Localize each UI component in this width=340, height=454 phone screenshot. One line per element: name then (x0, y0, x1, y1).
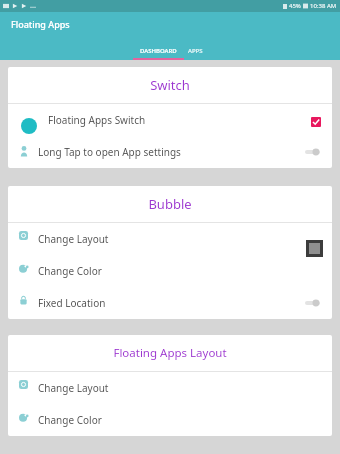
staticText: Fixed Location (38, 296, 106, 310)
button[interactable]: DASHBOARD (133, 42, 184, 60)
button[interactable]: Floating Apps Switch (8, 104, 332, 136)
staticText: Change Color (38, 264, 102, 278)
staticText: Floating Apps (11, 18, 70, 30)
button[interactable]: Change Layout (8, 223, 332, 255)
staticText: 45% (289, 2, 301, 10)
button[interactable]: Change Color (8, 404, 332, 436)
staticText: DASHBOARD (140, 47, 177, 55)
button[interactable]: Change Color (8, 255, 332, 287)
staticText: APPS (188, 47, 203, 55)
button[interactable]: Toggle off (305, 297, 320, 309)
button[interactable]: Long Tap to open App settings (8, 136, 332, 168)
button[interactable]: APPS (184, 42, 206, 60)
staticText: Switch (150, 76, 190, 94)
button[interactable]: Floating Apps Switch checkbox (311, 117, 321, 127)
staticText: Change Layout (38, 232, 109, 246)
staticText: Change Layout (38, 381, 109, 395)
staticText: 10:38 AM (310, 2, 337, 10)
button[interactable]: Fixed Location (8, 287, 332, 319)
button[interactable]: Change Layout (8, 372, 332, 404)
staticText: Floating Apps Switch (48, 113, 146, 127)
staticText: Bubble (148, 195, 192, 213)
staticText: Long Tap to open App settings (38, 145, 181, 159)
staticText: Floating Apps Layout (113, 345, 227, 361)
button[interactable]: Toggle off (305, 146, 320, 158)
staticText: Change Color (38, 413, 102, 427)
